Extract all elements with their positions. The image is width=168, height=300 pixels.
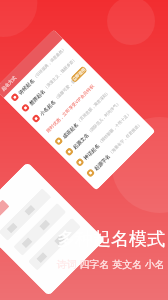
staticText: 起源字名 <box>93 153 111 171</box>
staticText: 立即使用 <box>71 67 86 82</box>
staticText: （国际范儿，时尚洋气） <box>86 100 121 135</box>
staticText: 起名方式 <box>1 75 18 92</box>
button[interactable]: 成语起名 <box>51 84 115 149</box>
staticText: （独特新颖，个性十足） <box>97 111 131 145</box>
staticText: 起源文名 <box>71 132 90 150</box>
button[interactable] <box>0 162 105 296</box>
staticText: 限时优惠，立即享受VIP会员特权 <box>45 82 95 133</box>
staticText: 小名起名 <box>38 99 57 117</box>
button[interactable]: 小名起名 <box>28 62 93 126</box>
button[interactable]: 立即使用 <box>70 65 88 83</box>
button[interactable]: 楚辞起名 <box>18 51 82 116</box>
button[interactable]: 诗经起名 <box>7 41 71 105</box>
staticText: 神话起名 <box>82 142 100 161</box>
staticText: （海量名字，任君挑选） <box>107 121 142 156</box>
staticText: 成语起名 <box>61 121 79 140</box>
staticText: （浪漫主义，瑰丽多姿） <box>42 56 77 91</box>
staticText: 楚辞起名 <box>28 88 46 106</box>
button[interactable]: 起源文名 <box>62 95 126 159</box>
button[interactable]: 神话起名 <box>72 106 136 170</box>
staticText: （言简意赅，寓意深刻） <box>76 89 110 124</box>
staticText: （温馨可爱，朗朗上口） <box>53 67 88 101</box>
staticText: （引经据典，诗意盎然） <box>32 46 66 80</box>
staticText: 诗词 四字名 英文名 小名 <box>57 257 165 271</box>
button[interactable]: 起名方式 <box>0 29 156 191</box>
button[interactable]: 起源字名 <box>83 116 147 181</box>
staticText: 多种起名模式 <box>57 228 165 251</box>
staticText: 诗经起名 <box>17 77 35 96</box>
